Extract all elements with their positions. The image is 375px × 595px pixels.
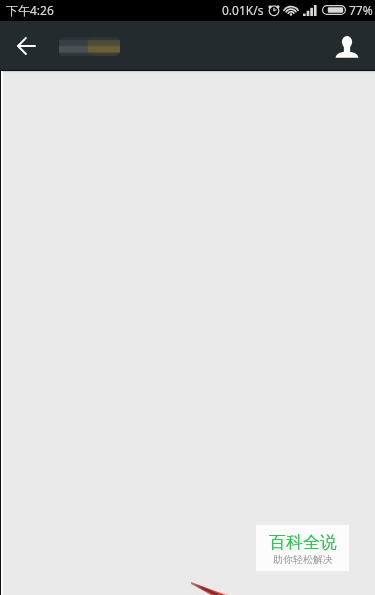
staticText: 下午4:26 (6, 2, 54, 18)
staticText: 助你轻松解决 (273, 553, 333, 566)
staticText: 百科全说 (269, 532, 337, 553)
staticText: 0.01K/s (222, 2, 264, 18)
button[interactable] (59, 37, 120, 56)
staticText: 77% (349, 2, 373, 18)
button[interactable]: Back (2, 22, 50, 70)
button[interactable]: Account (323, 22, 371, 70)
